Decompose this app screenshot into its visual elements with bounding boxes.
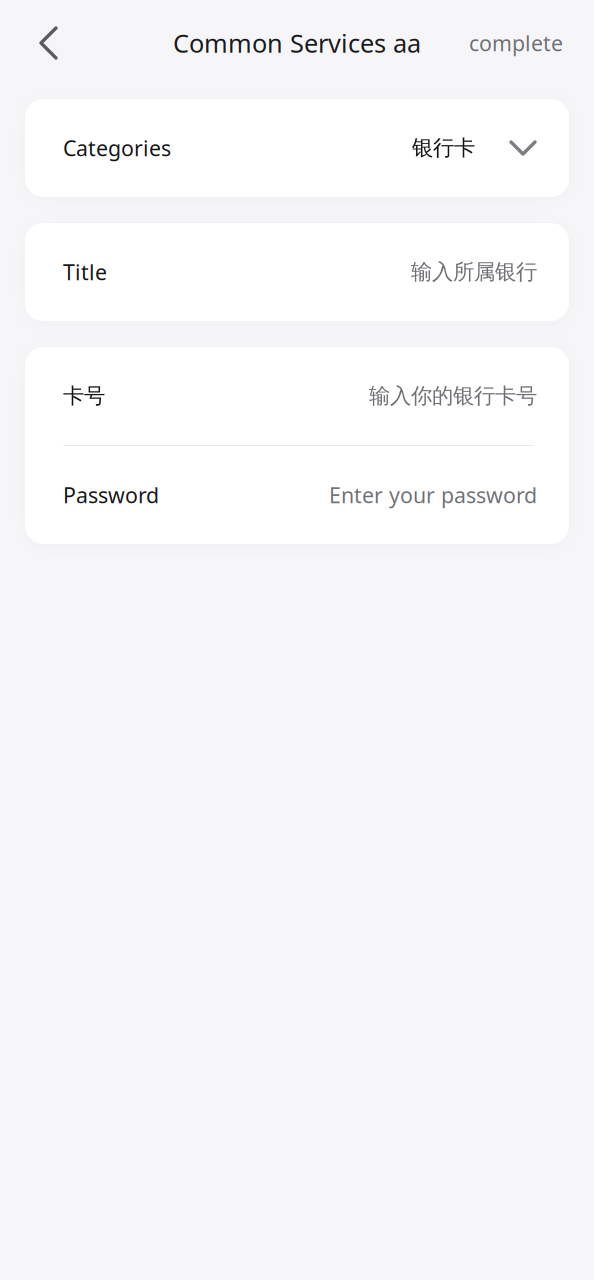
- button[interactable]: Title: [25, 223, 569, 321]
- button[interactable]: 卡号: [25, 347, 569, 445]
- staticText: 输入所属银行: [411, 259, 537, 285]
- staticText: 银行卡: [412, 135, 475, 161]
- staticText: Enter your password: [329, 481, 537, 509]
- staticText: Password: [63, 481, 159, 509]
- staticText: 卡号: [63, 383, 105, 409]
- staticText: 输入你的银行卡号: [369, 383, 537, 409]
- staticText: Title: [63, 258, 107, 286]
- button[interactable]: complete: [459, 13, 573, 73]
- button[interactable]: Categories: [25, 99, 569, 197]
- staticText: Categories: [63, 134, 171, 162]
- staticText: Common Services aa: [173, 26, 421, 60]
- button[interactable]: Back: [20, 13, 76, 73]
- staticText: complete: [469, 29, 563, 57]
- button[interactable]: Password: [25, 446, 569, 544]
